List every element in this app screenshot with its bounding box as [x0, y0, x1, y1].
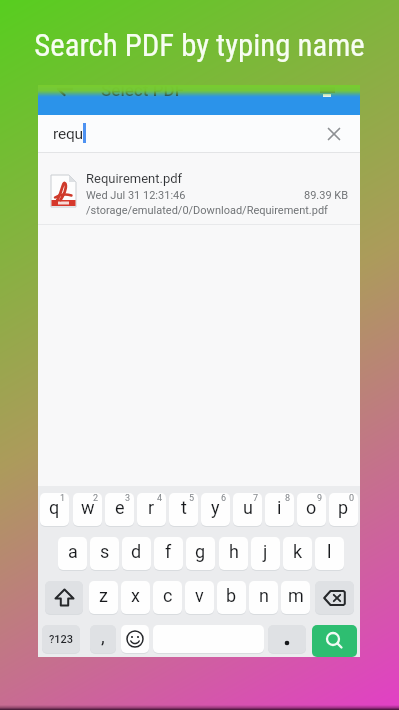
staticText: x — [131, 585, 140, 606]
button[interactable]: v — [185, 581, 214, 614]
staticText: v — [195, 585, 204, 606]
staticText: c — [163, 585, 173, 606]
button[interactable]: i — [265, 493, 294, 526]
button[interactable]: o — [297, 493, 326, 526]
button[interactable]: t — [169, 493, 198, 526]
button[interactable] — [328, 128, 340, 140]
button[interactable]: a — [58, 537, 87, 570]
button[interactable]: q — [40, 493, 69, 526]
button[interactable]: u — [233, 493, 262, 526]
staticText: 5 — [189, 493, 195, 504]
staticText: 8 — [285, 493, 291, 504]
staticText: /storage/emulated/0/Download/Requirement… — [86, 204, 328, 217]
button[interactable]: w — [73, 493, 102, 526]
staticText: e — [115, 497, 125, 518]
button[interactable] — [38, 153, 360, 225]
button[interactable]: y — [201, 493, 230, 526]
button[interactable]: j — [251, 537, 280, 570]
staticText: r — [148, 497, 155, 518]
staticText: i — [277, 497, 282, 518]
button[interactable] — [315, 581, 354, 614]
button[interactable]: l — [315, 537, 344, 570]
staticText: Search PDF by typing name — [0, 27, 399, 63]
staticText: w — [81, 497, 95, 518]
staticText: u — [243, 497, 253, 518]
button[interactable] — [312, 625, 357, 657]
staticText: , — [101, 625, 105, 647]
button[interactable]: x — [121, 581, 150, 614]
staticText: d — [131, 541, 142, 562]
button[interactable]: m — [281, 581, 310, 614]
staticText: 9 — [317, 493, 323, 504]
staticText: n — [259, 585, 269, 606]
staticText: p — [338, 497, 349, 518]
staticText: ?123 — [49, 633, 74, 646]
button[interactable]: z — [89, 581, 118, 614]
staticText: q — [49, 497, 60, 518]
button[interactable] — [45, 581, 83, 614]
staticText: 2 — [93, 493, 99, 504]
staticText: 0 — [349, 493, 355, 504]
staticText: Requirement.pdf — [86, 171, 183, 186]
staticText: 3 — [125, 493, 131, 504]
staticText: y — [211, 497, 220, 518]
staticText: m — [288, 585, 304, 606]
button[interactable]: s — [90, 537, 119, 570]
button[interactable]: p — [329, 493, 358, 526]
button[interactable]: ?123 — [42, 625, 80, 653]
button[interactable]: c — [153, 581, 182, 614]
button[interactable] — [121, 625, 149, 653]
staticText: t — [181, 497, 187, 518]
button[interactable] — [268, 625, 306, 653]
button[interactable]: e — [105, 493, 134, 526]
staticText: b — [226, 585, 237, 606]
button[interactable] — [38, 115, 360, 152]
staticText: j — [263, 541, 268, 562]
staticText: o — [306, 497, 317, 518]
button[interactable] — [56, 85, 74, 97]
staticText: 1 — [60, 493, 66, 504]
button[interactable]: r — [137, 493, 166, 526]
staticText: 89.39 KB — [304, 189, 349, 202]
staticText: s — [100, 541, 110, 562]
button[interactable] — [320, 87, 335, 93]
staticText: requ — [53, 125, 83, 143]
staticText: z — [99, 585, 108, 606]
button[interactable]: k — [283, 537, 312, 570]
button[interactable]: d — [122, 537, 151, 570]
staticText: Wed Jul 31 12:31:46 — [86, 189, 186, 202]
staticText: l — [327, 541, 332, 562]
staticText: Select PDF — [101, 85, 184, 100]
button[interactable]: n — [249, 581, 278, 614]
button[interactable]: g — [186, 537, 215, 570]
staticText: 7 — [253, 493, 259, 504]
staticText: g — [195, 541, 206, 562]
staticText: k — [293, 541, 303, 562]
staticText: f — [165, 541, 172, 562]
staticText: 4 — [157, 493, 163, 504]
button[interactable]: b — [217, 581, 246, 614]
button[interactable]: , — [90, 625, 116, 653]
button[interactable]: f — [154, 537, 183, 570]
staticText: a — [68, 541, 78, 562]
staticText: 6 — [221, 493, 227, 504]
button[interactable]: h — [219, 537, 248, 570]
staticText: h — [229, 541, 239, 562]
